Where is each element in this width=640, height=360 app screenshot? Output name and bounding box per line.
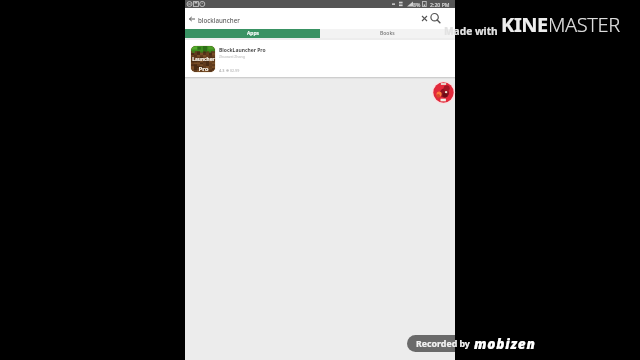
staticText: mobizen bbox=[474, 335, 536, 352]
button[interactable]: Books bbox=[320, 29, 455, 38]
staticText: KINE bbox=[501, 11, 548, 38]
staticText: 8% bbox=[413, 1, 421, 8]
staticText: BlockLauncher Pro bbox=[219, 47, 266, 54]
staticText: MASTER bbox=[548, 11, 620, 38]
staticText: Made with bbox=[444, 24, 498, 38]
staticText: $2.99 bbox=[230, 68, 240, 73]
staticText: Recorded by bbox=[416, 338, 470, 350]
staticText: Apps bbox=[247, 30, 259, 37]
staticText: Launcher bbox=[192, 56, 215, 63]
button[interactable]: Profile bbox=[431, 80, 456, 105]
staticText: Books bbox=[380, 30, 395, 37]
button[interactable]: Launcher bbox=[185, 40, 455, 77]
staticText: 4.3 bbox=[219, 68, 225, 73]
button[interactable]: Search bbox=[428, 8, 443, 29]
staticText: blocklauncher bbox=[198, 16, 240, 24]
button[interactable]: Clear bbox=[420, 8, 428, 29]
staticText: Zhuowei Zhang bbox=[219, 54, 246, 59]
button[interactable]: Apps bbox=[185, 29, 320, 38]
staticText: 2:20 PM bbox=[430, 1, 450, 8]
button[interactable]: Back bbox=[185, 8, 198, 29]
staticText: Pro bbox=[198, 65, 209, 72]
